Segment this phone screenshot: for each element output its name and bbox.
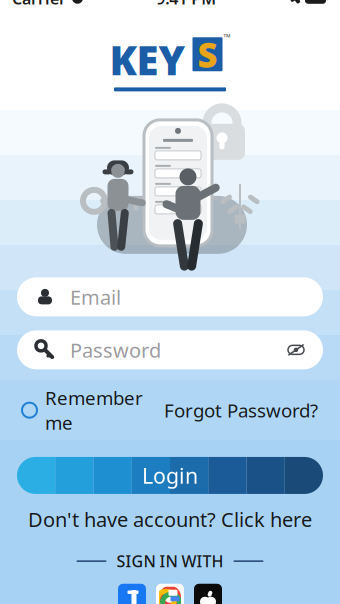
staticText: Forgot Password? (164, 398, 318, 423)
button[interactable]: Login (17, 457, 323, 494)
staticText: Password (70, 337, 161, 363)
button[interactable]: Password (17, 330, 323, 369)
button[interactable]: Remember me (22, 385, 143, 435)
staticText: KEY (109, 33, 185, 86)
staticText: Remember me (45, 385, 143, 435)
staticText: S (197, 31, 217, 77)
button[interactable]: Sign in with Facebook (118, 584, 146, 604)
button[interactable]: Email (17, 277, 323, 316)
staticText: Login (142, 461, 198, 490)
button[interactable]: Sign in with Apple (194, 584, 222, 604)
staticText: Carrier (12, 0, 66, 9)
button[interactable]: Forgot Password? (164, 398, 318, 423)
staticText: Don't have account? Click here (28, 506, 312, 532)
button[interactable]: Don't have account? Click here (28, 506, 312, 532)
button[interactable]: Sign in with Google (156, 584, 184, 604)
staticText: 9:41 PM (156, 0, 216, 9)
staticText: SIGN IN WITH (116, 550, 223, 572)
staticText: ™ (223, 31, 230, 44)
staticText: Email (70, 284, 121, 310)
